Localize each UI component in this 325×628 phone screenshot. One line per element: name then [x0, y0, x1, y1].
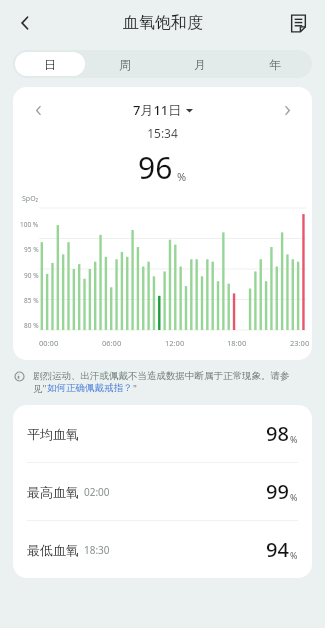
- button[interactable]: 7月11日: [51, 101, 274, 119]
- button[interactable]: Records: [279, 4, 317, 42]
- button[interactable]: 年: [239, 52, 310, 76]
- staticText: 见": [33, 382, 47, 395]
- button[interactable]: 月: [164, 52, 235, 76]
- staticText: 96: [138, 147, 173, 188]
- staticText: 平均血氧: [27, 426, 79, 442]
- staticText: 最低血氧: [27, 542, 79, 558]
- button[interactable]: 最高血氧: [13, 463, 312, 520]
- staticText: 06:00: [102, 338, 122, 348]
- button[interactable]: 平均血氧: [13, 405, 312, 462]
- staticText: 12:00: [165, 338, 185, 348]
- staticText: SpO₂: [22, 194, 39, 204]
- staticText: 18:30: [84, 543, 110, 557]
- staticText: 80 %: [24, 321, 39, 330]
- button[interactable]: Next day: [274, 97, 300, 123]
- staticText: 日: [44, 57, 56, 72]
- staticText: 23:00: [290, 338, 310, 348]
- staticText: 周: [119, 57, 131, 72]
- button[interactable]: 如何正确佩戴戒指？: [47, 382, 133, 394]
- staticText: 18:00: [227, 338, 247, 348]
- staticText: %: [177, 169, 187, 184]
- staticText: 85 %: [24, 296, 39, 305]
- staticText: 00:00: [39, 338, 59, 348]
- button[interactable]: 周: [89, 52, 160, 76]
- staticText: 90 %: [24, 271, 39, 280]
- staticText: 剧烈运动、出汗或佩戴不当造成数据中断属于正常现象。请参: [33, 370, 290, 382]
- staticText: 年: [269, 57, 281, 72]
- staticText: ": [133, 382, 137, 395]
- staticText: 15:34: [13, 125, 312, 141]
- staticText: 7月11日: [133, 101, 182, 119]
- button[interactable]: Back: [6, 4, 44, 42]
- staticText: 血氧饱和度: [123, 13, 203, 33]
- staticText: 95 %: [24, 245, 39, 254]
- button[interactable]: 最低血氧: [13, 521, 312, 578]
- button[interactable]: 日: [15, 52, 85, 76]
- staticText: 99: [266, 478, 289, 505]
- button[interactable]: Previous day: [25, 97, 51, 123]
- staticText: 94: [266, 536, 289, 563]
- staticText: 98: [266, 420, 289, 447]
- staticText: 最高血氧: [27, 484, 79, 500]
- staticText: %: [290, 549, 298, 561]
- staticText: 月: [194, 57, 206, 72]
- staticText: 02:00: [84, 485, 110, 499]
- staticText: %: [290, 491, 298, 503]
- staticText: %: [290, 433, 298, 445]
- staticText: 100 %: [20, 220, 39, 229]
